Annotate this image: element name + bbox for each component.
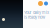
- staticText: Your daily mix is ready now: [24, 10, 49, 20]
